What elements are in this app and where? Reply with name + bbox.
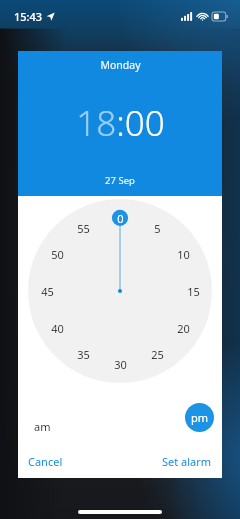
staticText: 27 Sep <box>105 174 135 187</box>
staticText: 45 <box>41 284 54 299</box>
staticText: 0 <box>117 211 124 226</box>
staticText: 50 <box>51 247 64 262</box>
staticText: 15 <box>187 284 200 299</box>
staticText: Monday <box>100 58 141 72</box>
staticText: 5 <box>154 221 161 236</box>
button[interactable]: Minute picker <box>28 199 212 383</box>
staticText: 10 <box>177 247 190 262</box>
staticText: 20 <box>177 321 190 336</box>
staticText: 55 <box>77 221 90 236</box>
staticText: pm <box>191 410 209 425</box>
staticText: 35 <box>77 347 90 362</box>
staticText: 15:43 <box>14 9 43 24</box>
button[interactable]: Cancel <box>22 449 69 474</box>
button[interactable]: Set alarm <box>156 449 218 474</box>
button[interactable]: pm <box>185 403 214 432</box>
button[interactable]: am <box>26 411 59 442</box>
staticText: 40 <box>51 321 64 336</box>
staticText: 30 <box>114 357 127 372</box>
staticText: 25 <box>151 347 164 362</box>
staticText: 18:00 <box>76 99 165 147</box>
